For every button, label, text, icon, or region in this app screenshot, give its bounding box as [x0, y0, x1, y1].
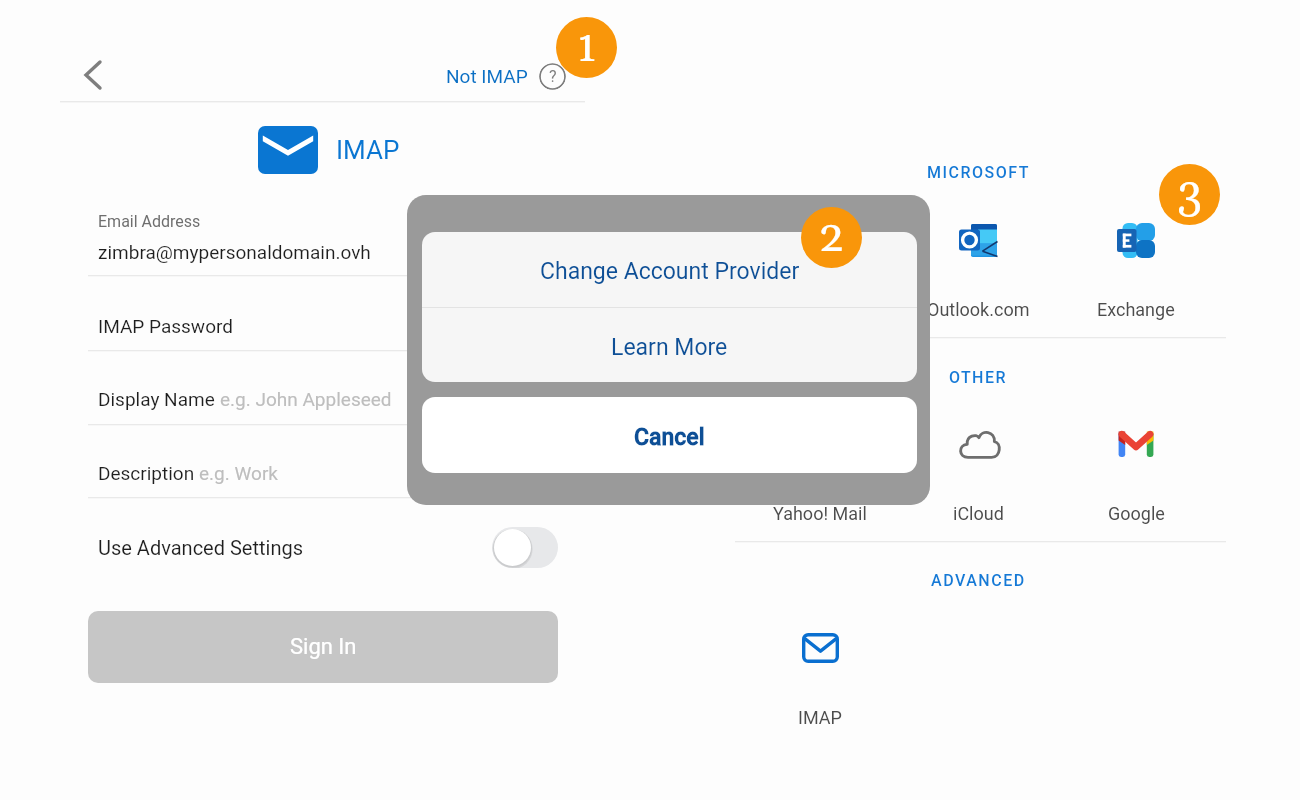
staticText: ADVANCED [931, 571, 1026, 590]
staticText: Outlook.com [927, 299, 1030, 320]
button[interactable]: Help [539, 63, 566, 90]
button[interactable]: iCloud [902, 410, 1054, 531]
staticText: Description [98, 462, 199, 484]
button[interactable]: Exchange [1060, 206, 1212, 327]
staticText: IMAP Password [98, 315, 233, 337]
staticText: e.g. Work [199, 462, 278, 484]
button[interactable]: Back [70, 52, 116, 98]
staticText: Yahoo! Mail [773, 503, 867, 524]
button[interactable]: Change Account Provider [422, 232, 917, 307]
staticText: Change Account Provider [540, 258, 800, 285]
button[interactable]: Use Advanced Settings, off [492, 527, 558, 568]
staticText: Sign In [290, 634, 357, 660]
button[interactable]: Use Advanced Settings [92, 521, 564, 573]
button[interactable]: Google [1060, 410, 1212, 531]
staticText: Display Name [98, 388, 220, 410]
staticText: OTHER [949, 368, 1008, 387]
staticText: Cancel [634, 424, 705, 451]
staticText: iCloud [953, 503, 1004, 524]
staticText: Not IMAP [446, 65, 528, 87]
staticText: Use Advanced Settings [98, 536, 303, 559]
staticText: e.g. John Appleseed [220, 388, 392, 410]
staticText: ? [549, 67, 557, 86]
button[interactable]: Cancel [422, 397, 917, 473]
staticText: 3 [1177, 166, 1202, 223]
button[interactable]: Not IMAP [446, 58, 528, 94]
staticText: Google [1108, 503, 1165, 524]
button[interactable]: Sign In [88, 611, 558, 683]
staticText: 2 [819, 209, 845, 266]
staticText: zimbra@mypersonaldomain.ovh [98, 241, 371, 263]
staticText: MICROSOFT [927, 163, 1030, 182]
button[interactable]: Yahoo! Mail [744, 410, 896, 531]
staticText: 1 [577, 19, 597, 76]
staticText: Exchange [1097, 299, 1175, 320]
button[interactable]: Learn More [422, 308, 917, 382]
button[interactable]: Outlook.com [902, 206, 1054, 327]
staticText: IMAP [798, 707, 842, 728]
button[interactable]: IMAP [744, 614, 896, 735]
staticText: Email Address [98, 212, 201, 231]
staticText: IMAP [336, 135, 400, 165]
staticText: Learn More [611, 334, 728, 361]
